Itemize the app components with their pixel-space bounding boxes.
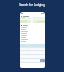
button[interactable]: Search for Lodging [19,3,45,7]
